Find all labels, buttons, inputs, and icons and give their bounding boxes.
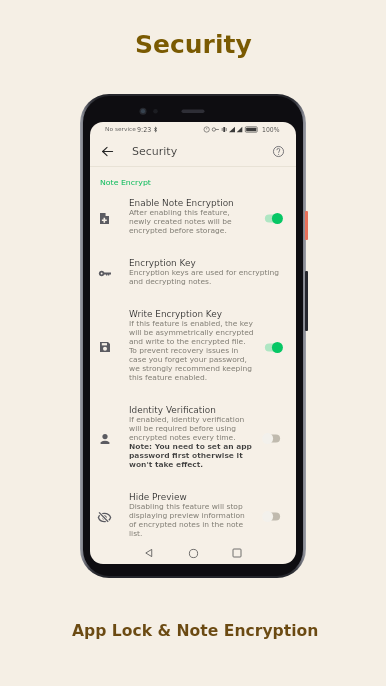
staticText: No service [105, 126, 136, 133]
staticText: Identity Verification [129, 405, 216, 415]
button[interactable]: Switch on [262, 212, 283, 225]
staticText: 100% [262, 126, 280, 133]
staticText: Encryption Key [129, 258, 196, 268]
button[interactable]: Home [181, 542, 205, 564]
staticText: Disabling this feature will stop display… [129, 502, 245, 538]
staticText: 9:23 [137, 126, 152, 133]
staticText: If enabled, identity verification will b… [129, 415, 252, 469]
staticText: Write Encryption Key [129, 309, 222, 319]
button[interactable]: Identity Verification [90, 395, 296, 482]
staticText: Security [135, 30, 252, 59]
staticText: Encryption keys are used for encrypting … [129, 268, 280, 286]
staticText: Enable Note Encryption [129, 198, 234, 208]
button[interactable]: Switch on [262, 341, 283, 354]
button[interactable]: Switch off [262, 510, 283, 523]
button[interactable]: Switch off [262, 432, 283, 445]
staticText: Hide Preview [129, 492, 187, 502]
staticText: After enabling this feature, newly creat… [129, 208, 232, 235]
button[interactable]: Recents [225, 542, 249, 564]
staticText: Note Encrypt [100, 178, 151, 187]
button[interactable]: Encryption Key [90, 248, 296, 299]
staticText: Security [132, 145, 178, 158]
staticText: If this feature is enabled, the key will… [129, 319, 254, 382]
button[interactable]: Write Encryption Key [90, 299, 296, 395]
button[interactable]: Back [97, 141, 118, 162]
button[interactable]: Enable Note Encryption [90, 188, 296, 248]
button[interactable]: Back [137, 542, 161, 564]
staticText: App Lock & Note Encryption [72, 622, 319, 640]
button[interactable]: Hide Preview [90, 482, 296, 551]
button[interactable]: Help [268, 141, 289, 162]
